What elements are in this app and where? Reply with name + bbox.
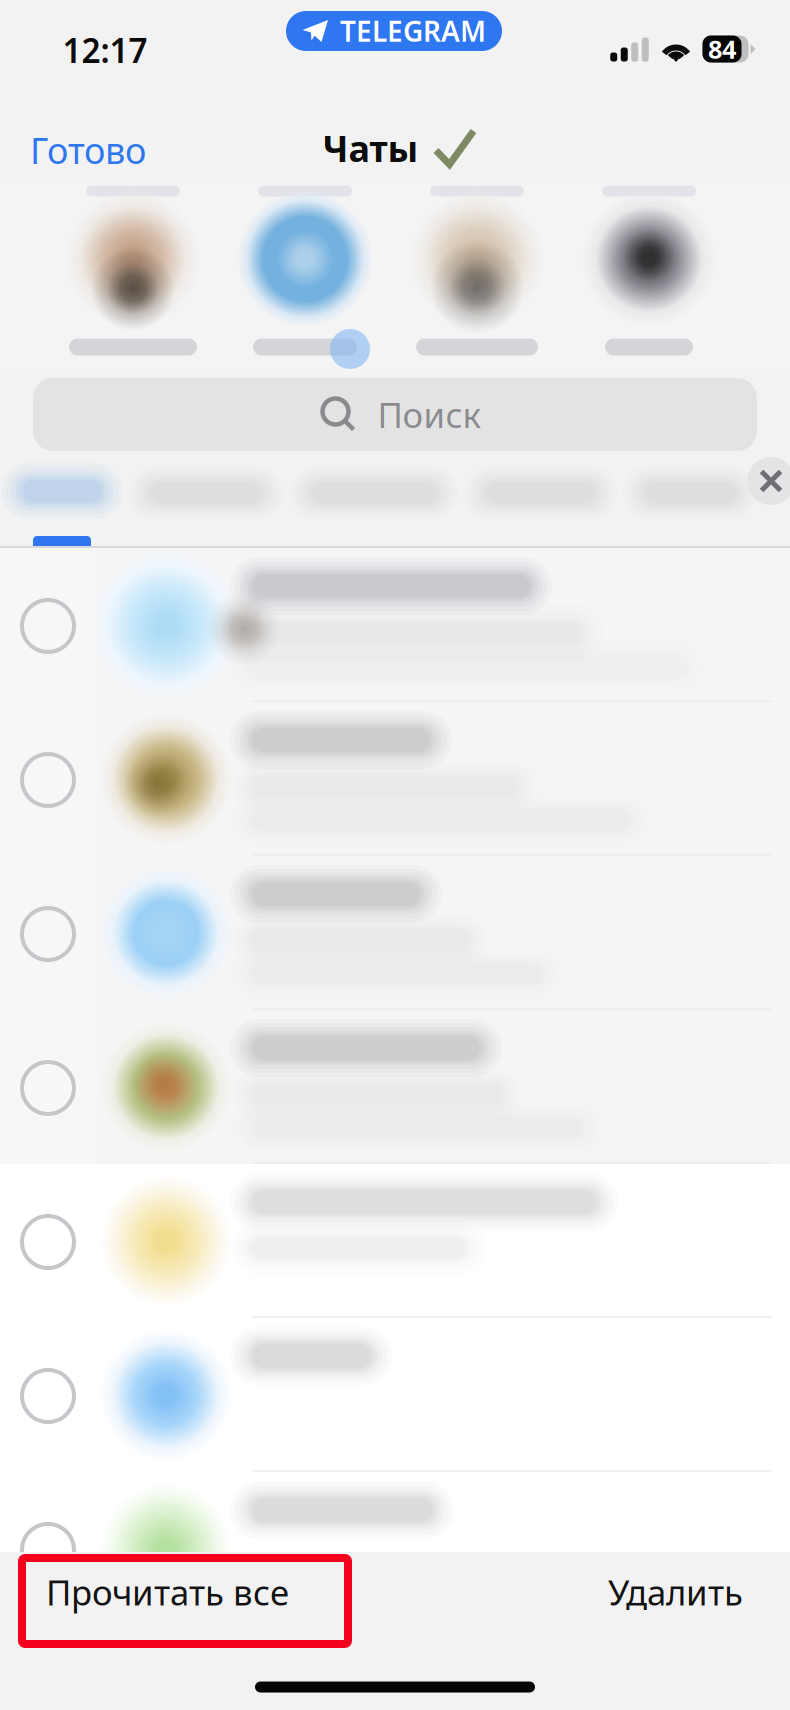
staticText: Готово: [30, 126, 146, 174]
button[interactable]: Story: [391, 185, 563, 371]
staticText: 84: [708, 32, 736, 66]
button[interactable]: [0, 702, 790, 856]
staticText: 12:17: [62, 28, 147, 72]
button[interactable]: Close filters: [739, 449, 790, 513]
button[interactable]: Story: [563, 185, 735, 371]
button[interactable]: Готово: [30, 112, 210, 188]
button[interactable]: Story: [47, 185, 219, 371]
button[interactable]: Story: [219, 185, 391, 371]
button[interactable]: [0, 1164, 790, 1318]
staticText: Прочитать все: [46, 1569, 289, 1615]
staticText: Чаты: [322, 124, 418, 172]
button[interactable]: [0, 1010, 790, 1164]
button[interactable]: [0, 1472, 790, 1626]
staticText: Удалить: [608, 1569, 743, 1615]
button[interactable]: [0, 548, 790, 702]
staticText: Поиск: [377, 391, 480, 437]
button[interactable]: Прочитать все: [46, 1544, 406, 1640]
button[interactable]: Удалить: [483, 1544, 743, 1640]
button[interactable]: [0, 1318, 790, 1472]
button[interactable]: [0, 856, 790, 1010]
staticText: TELEGRAM: [340, 12, 486, 50]
